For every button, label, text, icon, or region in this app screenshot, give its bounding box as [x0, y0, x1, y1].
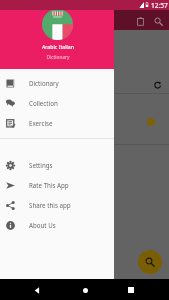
- button[interactable]: Exercise: [0, 113, 114, 133]
- button[interactable]: Collection: [0, 93, 114, 113]
- button[interactable]: Recents: [122, 281, 140, 299]
- button[interactable]: Home: [76, 281, 94, 299]
- button[interactable]: Refresh: [151, 78, 165, 92]
- staticText: Collection: [29, 99, 58, 107]
- staticText: Settings: [29, 161, 53, 169]
- staticText: About Us: [29, 221, 56, 229]
- button[interactable]: Search: [138, 250, 162, 274]
- staticText: Dictionary: [29, 79, 59, 87]
- staticText: Exercise: [29, 119, 53, 127]
- button[interactable]: Back: [28, 281, 46, 299]
- button[interactable]: [0, 94, 169, 144]
- staticText: 12:57: [151, 1, 168, 10]
- button[interactable]: Dictionary: [0, 73, 114, 93]
- button[interactable]: About Us: [0, 215, 114, 235]
- button[interactable]: Search: [148, 11, 168, 31]
- button[interactable]: Clipboard: [130, 11, 150, 31]
- button[interactable]: Share this app: [0, 195, 114, 215]
- button[interactable]: Rate This App: [0, 175, 114, 195]
- staticText: Dictionary: [1, 54, 115, 61]
- staticText: Share this app: [29, 201, 71, 209]
- button[interactable]: Settings: [0, 155, 114, 175]
- staticText: Arabic Italian: [1, 43, 115, 50]
- staticText: Rate This App: [29, 181, 69, 189]
- button[interactable]: Refresh: [0, 30, 169, 93]
